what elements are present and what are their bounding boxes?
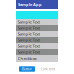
staticText: Sample Text	[17, 43, 39, 49]
staticText: Sample App	[18, 2, 42, 7]
button[interactable]: Button	[19, 66, 35, 72]
staticText: Sample Text	[17, 19, 39, 25]
staticText: Checkbox	[17, 56, 36, 61]
staticText: Link text	[41, 67, 55, 71]
staticText: Sample Text	[17, 49, 39, 55]
staticText: Sample Text	[17, 37, 39, 43]
staticText: Button	[22, 67, 32, 71]
staticText: Sample Text	[17, 31, 39, 37]
staticText: Sample Text	[17, 25, 39, 31]
